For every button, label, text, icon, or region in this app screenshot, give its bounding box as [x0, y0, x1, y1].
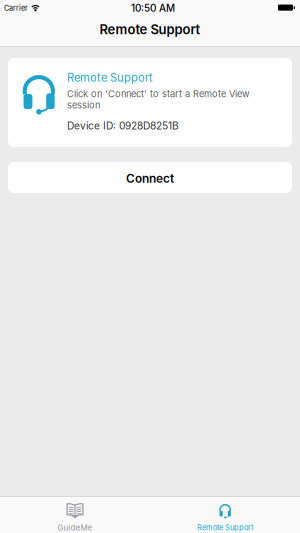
staticText: Remote Support: [67, 71, 153, 84]
staticText: Remote Support: [197, 523, 253, 532]
button[interactable]: GuideMe: [0, 497, 150, 533]
staticText: GuideMe: [57, 523, 92, 532]
staticText: session: [67, 99, 100, 111]
staticText: 10:50 AM: [131, 2, 175, 14]
staticText: Carrier: [4, 4, 28, 12]
button[interactable]: Remote Support: [150, 497, 300, 533]
staticText: Click on 'Connect' to start a Remote Vie…: [67, 88, 250, 99]
staticText: Remote Support: [99, 22, 200, 37]
staticText: Device ID: 0928D8251B: [67, 120, 179, 132]
staticText: Connect: [126, 171, 174, 186]
button[interactable]: Connect: [8, 162, 292, 193]
